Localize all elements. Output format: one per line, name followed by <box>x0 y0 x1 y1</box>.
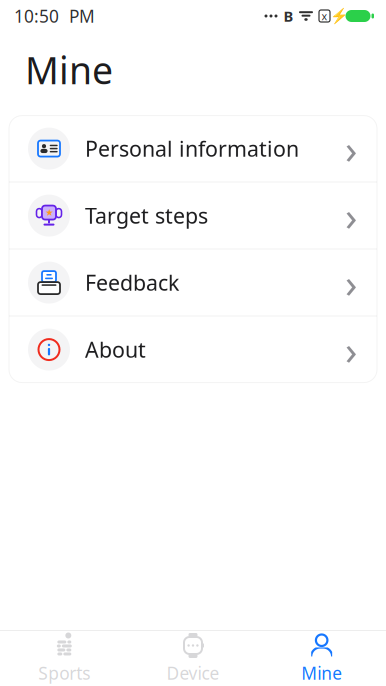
button[interactable]: Device <box>129 631 257 686</box>
staticText: B <box>283 6 293 26</box>
button[interactable]: Feedback <box>9 250 377 316</box>
staticText: › <box>345 122 357 175</box>
staticText: Sports <box>38 661 90 684</box>
staticText: Mine <box>25 45 113 95</box>
staticText: x <box>321 9 327 23</box>
button[interactable]: Mine <box>257 631 386 686</box>
button[interactable]: Sports <box>0 631 129 686</box>
staticText: About <box>85 335 146 364</box>
button[interactable]: ★ <box>9 183 377 249</box>
staticText: ⚡ <box>330 8 348 24</box>
staticText: › <box>345 256 357 309</box>
staticText: Feedback <box>85 268 179 297</box>
staticText: 10:50 PM <box>14 4 95 27</box>
button[interactable]: About <box>9 317 377 383</box>
staticText: Personal information <box>85 134 299 163</box>
staticText: Target steps <box>85 201 208 230</box>
staticText: › <box>345 323 357 376</box>
staticText: ★ <box>45 207 53 218</box>
staticText: Mine <box>301 661 342 684</box>
staticText: Device <box>166 661 219 684</box>
staticText: › <box>345 189 357 242</box>
button[interactable]: Personal information <box>9 116 377 182</box>
